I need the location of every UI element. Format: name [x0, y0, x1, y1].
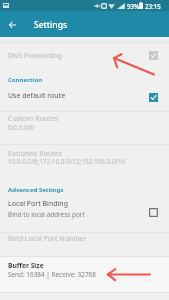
button[interactable]: DNS Forwarding: [0, 42, 169, 68]
button[interactable]: Custom Routes: [0, 112, 169, 144]
staticText: Buffer Size: [8, 261, 44, 270]
staticText: Send: 16384 | Receive: 32768: [8, 270, 96, 279]
button[interactable]: Buffer Size: [0, 257, 169, 292]
button[interactable]: Bind Local Port Number: [0, 233, 169, 256]
staticText: Advanced Settings: [8, 186, 64, 194]
staticText: Use default route: [8, 91, 66, 101]
button[interactable]: Local Port Binding: [0, 195, 169, 232]
staticText: Settings: [34, 19, 68, 31]
staticText: Excluded Routes: [8, 149, 63, 159]
staticText: Custom Routes: [8, 114, 58, 124]
staticText: Local Port Binding: [8, 199, 68, 209]
button[interactable]: Excluded Routes: [0, 145, 169, 177]
staticText: 0.0.0.0/0: [8, 123, 34, 132]
staticText: 93%: [127, 2, 140, 10]
button[interactable]: Back: [4, 16, 21, 33]
staticText: DNS Forwarding: [8, 51, 62, 61]
other: Toggle: [149, 93, 158, 102]
other: Toggle: [149, 208, 158, 217]
staticText: 23:15: [145, 2, 161, 10]
other: Toggle: [149, 51, 158, 60]
button[interactable]: Use default route: [0, 85, 169, 111]
staticText: 10.0.0.0/8;172.16.0.0/12;192.168.0.0/16: [8, 157, 126, 166]
staticText: Bind Local Port Number: [8, 234, 87, 244]
staticText: Bind to local address port: [8, 210, 85, 219]
staticText: Connection: [8, 76, 43, 84]
